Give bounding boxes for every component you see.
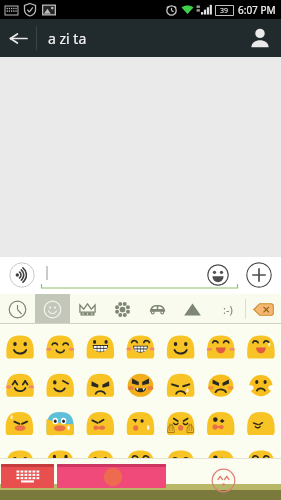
- button[interactable]: Smileys: [35, 294, 70, 324]
- staticText: a zi ta: [48, 29, 87, 48]
- button[interactable]: Objects: [70, 294, 105, 324]
- button[interactable]: Recent emoji: [0, 294, 35, 324]
- button[interactable]: Add attachment: [246, 262, 272, 288]
- button[interactable]: Space: [57, 464, 166, 488]
- button[interactable]: Switch keyboard: [1, 464, 54, 488]
- button[interactable]: Nature: [105, 294, 140, 324]
- button[interactable]: Voice message: [9, 262, 35, 288]
- staticText: 39: [220, 6, 229, 15]
- button[interactable]: Emoji: [207, 264, 229, 286]
- button[interactable]: Back: [0, 19, 36, 57]
- button[interactable]: Travel: [140, 294, 175, 324]
- button[interactable]: Places: [175, 294, 210, 324]
- staticText: 6:07 PM: [238, 3, 276, 17]
- staticText: :-): [223, 302, 233, 317]
- button[interactable]: Emoticons: [210, 294, 245, 324]
- button[interactable]: Emoji keyboard: [208, 465, 239, 496]
- button[interactable]: Contact profile: [239, 19, 281, 57]
- button[interactable]: Backspace: [246, 294, 281, 324]
